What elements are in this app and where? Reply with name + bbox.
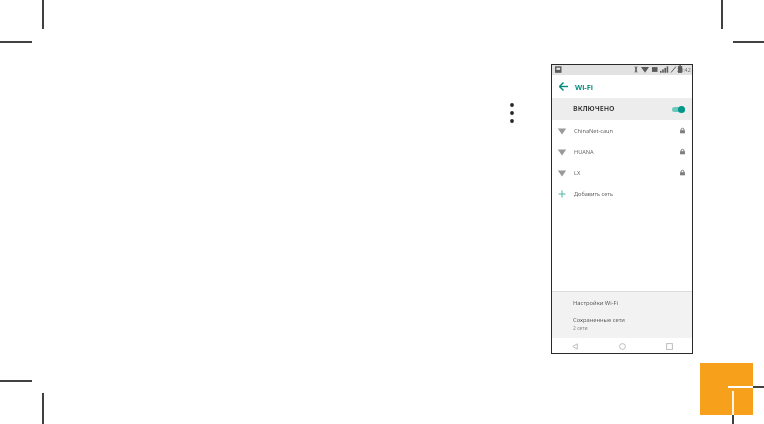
staticText: HUANA — [574, 148, 679, 156]
button[interactable]: Recents — [646, 338, 693, 354]
staticText: LX — [574, 169, 679, 177]
button[interactable]: Back — [551, 75, 575, 98]
button[interactable]: Back — [551, 338, 599, 354]
button[interactable]: Настройки Wi-Fi — [551, 292, 693, 313]
staticText: Добавить сеть — [574, 190, 613, 198]
button[interactable]: Сохраненные сети — [551, 313, 693, 335]
staticText: ChinaNet-caun — [574, 127, 679, 135]
button[interactable]: ChinaNet-caun — [551, 120, 693, 141]
button[interactable]: LX — [551, 162, 693, 183]
button[interactable]: HUANA — [551, 141, 693, 162]
button[interactable]: Добавить сеть — [551, 183, 693, 204]
button[interactable]: Home — [599, 338, 646, 354]
staticText: Wi-Fi — [575, 82, 593, 92]
staticText: ВКЛЮЧЕНО — [573, 104, 672, 114]
staticText: 2 сети — [573, 325, 588, 332]
staticText: Сохраненные сети — [573, 316, 625, 324]
staticText: 20:42 — [677, 66, 691, 73]
button[interactable]: ВКЛЮЧЕНО — [551, 98, 693, 120]
button[interactable]: More options — [505, 101, 519, 125]
staticText: Настройки Wi-Fi — [573, 299, 619, 307]
